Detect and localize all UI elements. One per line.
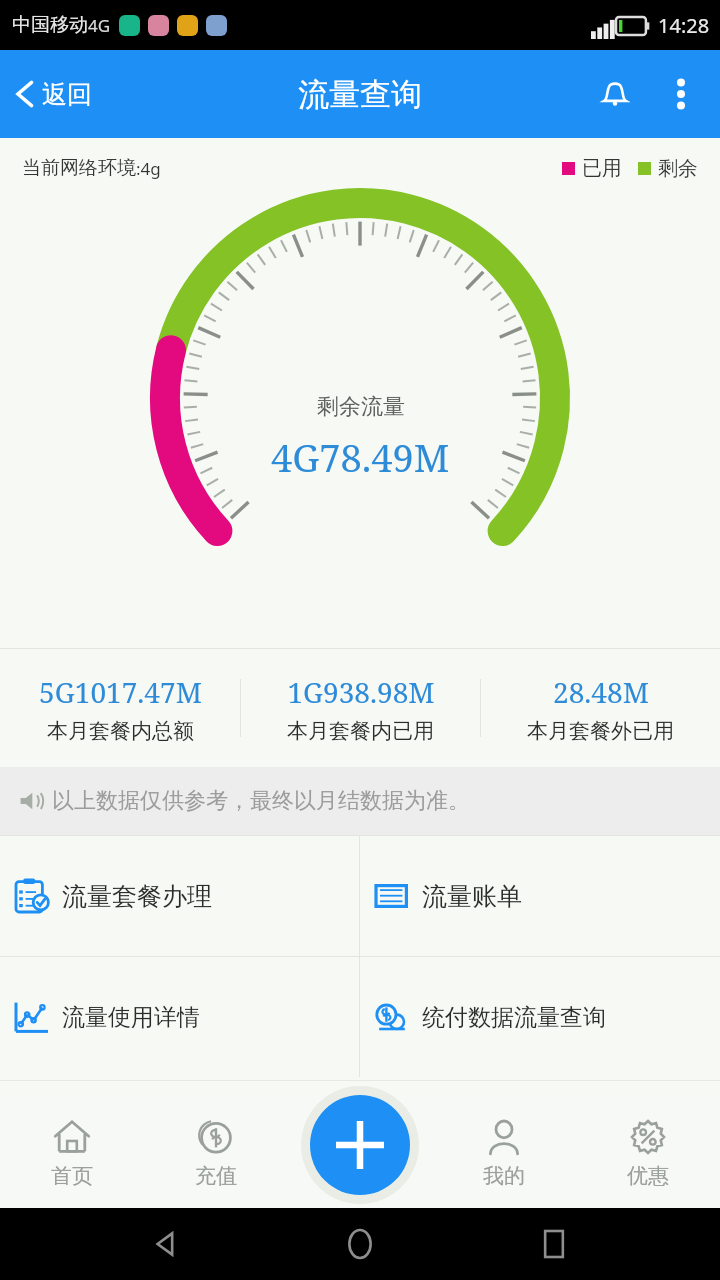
staticText: 首页 <box>51 1163 93 1189</box>
staticText: 我的 <box>483 1163 525 1189</box>
staticText: 流量套餐办理 <box>62 881 212 912</box>
staticText: 中国移动 <box>12 13 88 37</box>
button[interactable]: 流量套餐办理 <box>0 836 359 956</box>
staticText: 1G938.98M <box>287 673 435 711</box>
button[interactable]: Back <box>138 1216 194 1272</box>
staticText: :4g <box>136 157 161 180</box>
staticText: 当前网络环境 <box>22 156 136 180</box>
staticText: 4G78.49M <box>271 431 450 483</box>
button[interactable]: 返回 <box>0 69 106 119</box>
staticText: 充值 <box>195 1163 237 1189</box>
button[interactable]: 首页 <box>0 1098 144 1208</box>
staticText: 流量使用详情 <box>62 1003 200 1032</box>
staticText: 流量账单 <box>422 881 522 912</box>
staticText: 本月套餐内总额 <box>47 718 194 744</box>
button[interactable]: 统付数据流量查询 <box>360 957 720 1077</box>
staticText: 4G <box>88 14 111 37</box>
button[interactable]: Add <box>310 1095 410 1195</box>
button[interactable]: Notifications <box>582 61 648 127</box>
staticText: 14:28 <box>658 12 710 39</box>
staticText: 剩余 <box>658 156 698 181</box>
button[interactable]: More options <box>648 61 714 127</box>
button[interactable]: 1G938.98M <box>241 649 480 767</box>
button[interactable]: 流量账单 <box>360 836 720 956</box>
button[interactable]: Recent apps <box>526 1216 582 1272</box>
staticText: 5G1017.47M <box>39 673 202 711</box>
button[interactable]: Home <box>332 1216 388 1272</box>
staticText: 流量查询 <box>298 75 422 114</box>
staticText: 统付数据流量查询 <box>422 1003 606 1032</box>
staticText: 本月套餐内已用 <box>287 718 434 744</box>
button[interactable]: 28.48M <box>481 649 720 767</box>
button[interactable]: 流量使用详情 <box>0 957 359 1077</box>
staticText: 优惠 <box>627 1163 669 1189</box>
staticText: 以上数据仅供参考，最终以月结数据为准。 <box>52 787 470 815</box>
button[interactable]: 优惠 <box>576 1098 720 1208</box>
button[interactable]: 我的 <box>432 1098 576 1208</box>
staticText: 28.48M <box>553 673 649 711</box>
button[interactable]: 充值 <box>144 1098 288 1208</box>
button[interactable]: 5G1017.47M <box>0 649 240 767</box>
staticText: 返回 <box>42 79 92 110</box>
staticText: 剩余流量 <box>317 393 405 421</box>
staticText: 本月套餐外已用 <box>527 718 674 744</box>
staticText: 已用 <box>582 156 622 181</box>
